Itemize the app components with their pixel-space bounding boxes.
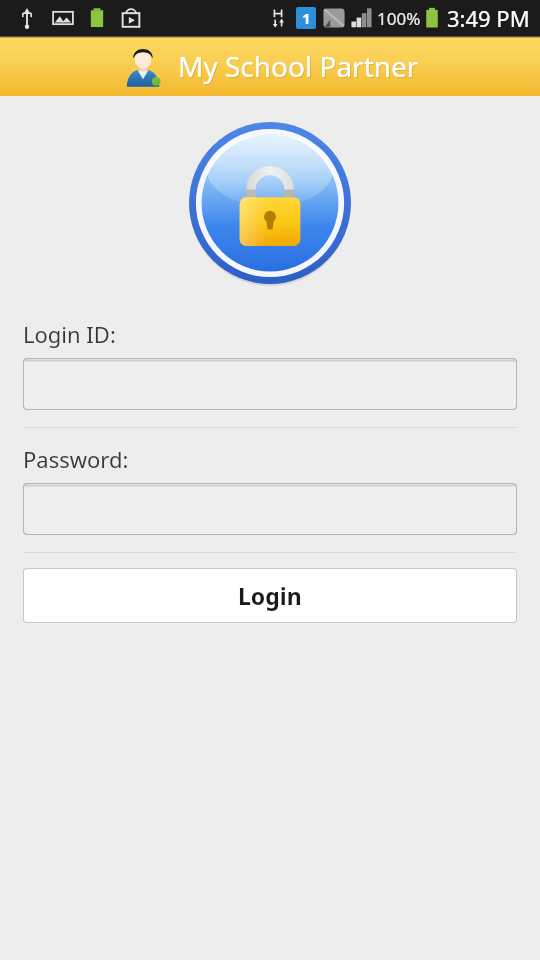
staticText: My School Partner (179, 48, 420, 86)
staticText: Login (238, 580, 302, 611)
button[interactable] (23, 358, 517, 410)
staticText: My School Partner (178, 47, 419, 85)
button[interactable] (23, 483, 517, 535)
staticText: Login ID: (23, 319, 116, 349)
staticText: Password: (23, 444, 129, 474)
staticText: 100% (377, 7, 421, 30)
staticText: 3:49 PM (447, 3, 530, 33)
button[interactable]: Login (23, 568, 517, 623)
staticText: 1 (302, 8, 311, 28)
